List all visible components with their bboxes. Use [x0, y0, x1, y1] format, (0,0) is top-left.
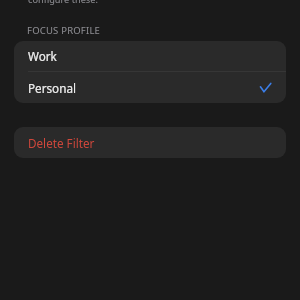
other: Selected [260, 83, 271, 93]
staticText: FOCUS PROFILE [27, 24, 101, 37]
staticText: Work [28, 48, 57, 64]
button[interactable]: Delete Filter [14, 127, 286, 158]
button[interactable]: Personal [14, 72, 286, 103]
staticText: Delete Filter [28, 135, 95, 151]
staticText: configure these. [28, 0, 98, 6]
staticText: Personal [28, 80, 76, 96]
button[interactable]: Work [14, 41, 286, 71]
